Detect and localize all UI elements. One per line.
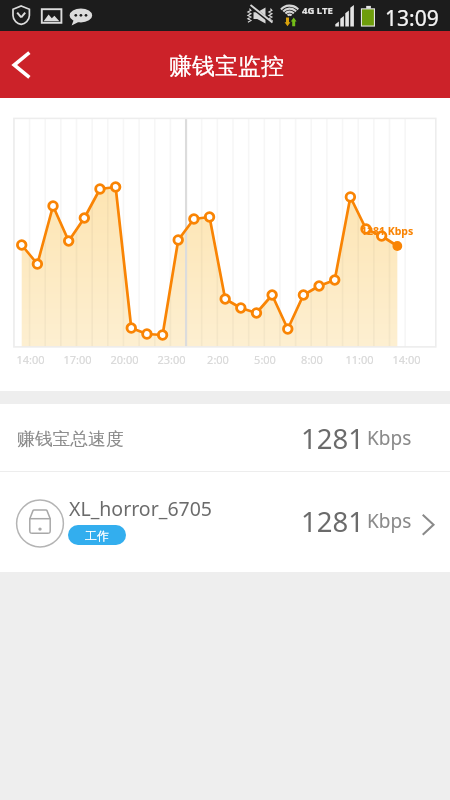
staticText: 1281 bbox=[301, 503, 364, 540]
staticText: 赚钱宝监控 bbox=[169, 52, 284, 81]
staticText: XL_horror_6705 bbox=[69, 495, 212, 522]
button[interactable]: Back bbox=[0, 37, 46, 93]
button[interactable]: 工作 bbox=[68, 525, 126, 545]
button[interactable]: 赚钱宝总速度 bbox=[0, 404, 450, 471]
staticText: 8:00 bbox=[301, 352, 323, 367]
staticText: 2:00 bbox=[207, 352, 229, 367]
button[interactable]: XL_horror_6705 bbox=[0, 472, 450, 572]
staticText: Kbps bbox=[367, 425, 412, 451]
staticText: Kbps bbox=[367, 508, 412, 534]
staticText: 4G LTE bbox=[302, 4, 333, 17]
staticText: 17:00 bbox=[63, 352, 92, 367]
staticText: 20:00 bbox=[110, 352, 139, 367]
staticText: 14:00 bbox=[392, 352, 421, 367]
staticText: 5:00 bbox=[254, 352, 276, 367]
staticText: 1281 Kbps bbox=[361, 224, 414, 238]
staticText: 赚钱宝总速度 bbox=[17, 428, 124, 450]
staticText: 1281 bbox=[301, 420, 364, 457]
staticText: 14:00 bbox=[16, 352, 45, 367]
staticText: 23:00 bbox=[157, 352, 186, 367]
staticText: 13:09 bbox=[385, 4, 439, 33]
staticText: 工作 bbox=[85, 528, 109, 543]
staticText: 11:00 bbox=[345, 352, 374, 367]
